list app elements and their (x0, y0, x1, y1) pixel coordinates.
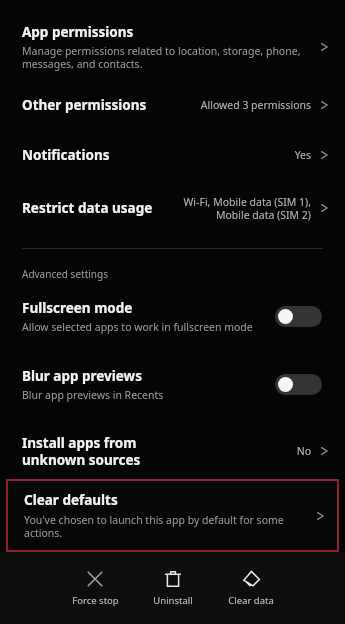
staticText: Uninstall (153, 594, 193, 607)
button[interactable]: Uninstall (134, 565, 212, 611)
button[interactable]: Notifications (0, 130, 345, 180)
staticText: Blur app previews (22, 367, 142, 385)
staticText: No (296, 444, 311, 458)
staticText: Advanced settings (22, 267, 108, 281)
button[interactable]: Other permissions (0, 80, 345, 130)
staticText: Restrict data usage (22, 199, 153, 217)
button[interactable]: Toggle (275, 374, 322, 395)
staticText: Other permissions (22, 96, 147, 114)
staticText: App permissions (22, 23, 134, 41)
staticText: Allow selected apps to work in fullscree… (22, 320, 253, 334)
staticText: Yes (294, 148, 311, 162)
staticText: Allowed 3 permissions (200, 98, 311, 112)
button[interactable]: Blur app previews (0, 361, 345, 407)
staticText: Manage permissions related to location, … (22, 44, 301, 71)
staticText: Blur app previews in Recents (22, 388, 164, 402)
staticText: Fullscreen mode (22, 299, 133, 317)
staticText: Clear defaults (24, 491, 118, 509)
staticText: Install apps from unknown sources (22, 434, 141, 469)
button[interactable]: Install apps from unknown sources (0, 429, 345, 473)
staticText: Wi-Fi, Mobile data (SIM 1), Mobile data … (183, 195, 311, 222)
staticText: You've chosen to launch this app by defa… (24, 513, 313, 540)
button[interactable]: Clear data (212, 565, 290, 611)
staticText: Notifications (22, 146, 110, 164)
staticText: Clear data (228, 594, 274, 607)
button[interactable]: App permissions (0, 14, 345, 80)
button[interactable]: Clear defaults (8, 481, 337, 550)
staticText: Force stop (72, 594, 119, 607)
button[interactable]: Fullscreen mode (0, 293, 345, 339)
button[interactable]: Force stop (56, 565, 134, 611)
button[interactable]: Toggle (275, 306, 322, 327)
button[interactable]: Restrict data usage (0, 180, 345, 236)
